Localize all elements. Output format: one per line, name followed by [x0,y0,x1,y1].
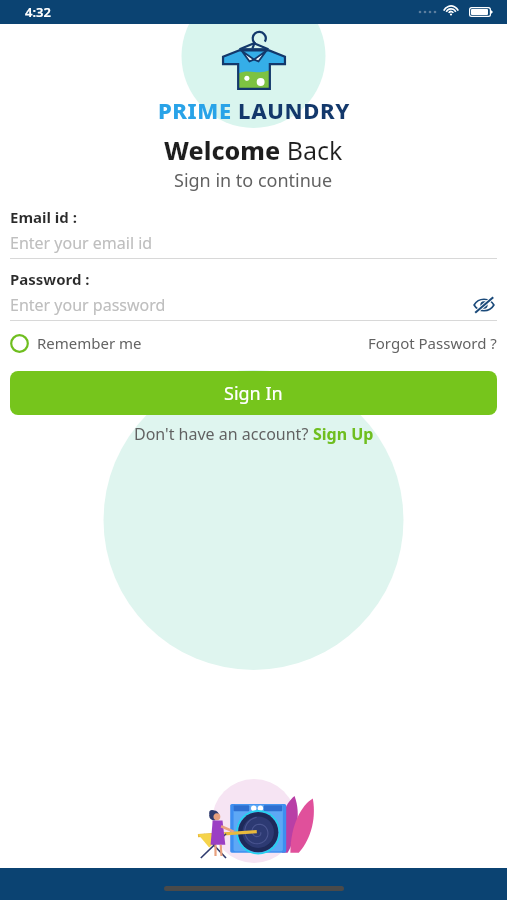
staticText: PRIME LAUNDRY [158,95,350,125]
staticText: Remember me [37,333,142,353]
button[interactable]: Sign In [10,371,497,415]
button[interactable]: Remember me [10,333,142,353]
button[interactable]: Sign Up [313,423,374,445]
staticText: Sign Up [313,423,374,445]
staticText: Email id : [10,207,77,227]
staticText: 4:32 [25,3,51,21]
button[interactable]: Show password [471,293,497,317]
staticText: Enter your password [10,294,471,316]
staticText: Don't have an account? [134,423,313,445]
staticText: Sign in to continue [174,168,333,193]
button[interactable]: Enter your email id [10,231,497,255]
staticText: Password : [10,269,90,289]
button[interactable]: Forgot Password ? [368,333,497,353]
staticText: Sign In [224,381,283,406]
button[interactable]: Enter your password [10,293,497,317]
staticText: Enter your email id [10,232,153,254]
staticText: Welcome Back [164,133,343,167]
staticText: Forgot Password ? [368,333,497,353]
